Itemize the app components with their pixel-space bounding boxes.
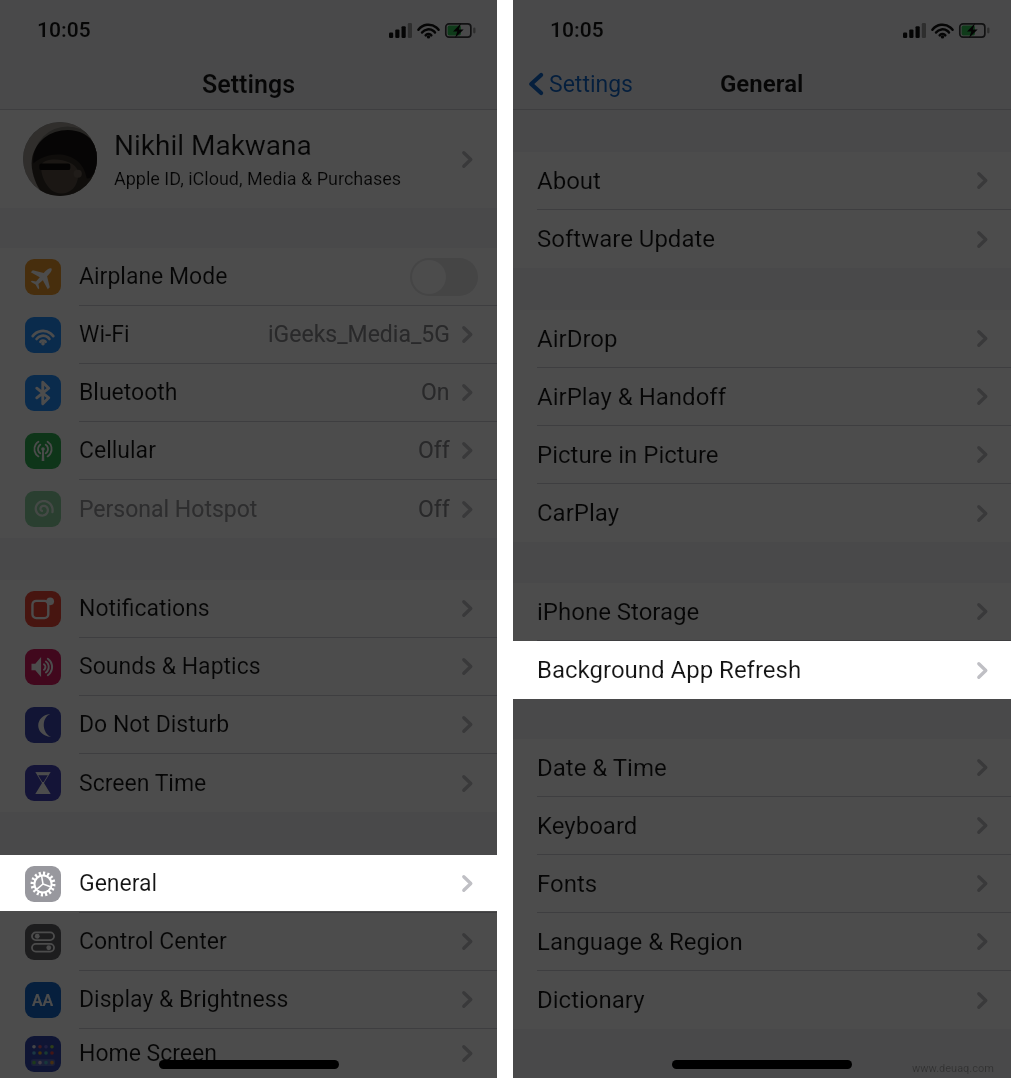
staticText: Dictionary xyxy=(537,986,645,1014)
button[interactable]: Wi-Fi xyxy=(0,306,497,363)
staticText: Personal Hotspot xyxy=(79,496,258,523)
staticText: General xyxy=(720,70,804,98)
staticText: General xyxy=(79,870,158,897)
button[interactable]: About xyxy=(513,152,1011,209)
staticText: Settings xyxy=(549,71,633,98)
button[interactable]: CarPlay xyxy=(513,484,1011,542)
staticText: Keyboard xyxy=(537,812,638,840)
staticText: Background App Refresh xyxy=(537,656,802,684)
staticText: Do Not Disturb xyxy=(79,711,230,738)
button[interactable]: Fonts xyxy=(513,855,1011,912)
staticText: Off xyxy=(418,496,450,523)
staticText: Language & Region xyxy=(537,928,743,956)
staticText: Control Center xyxy=(79,928,227,955)
button[interactable]: Control Center xyxy=(0,913,497,970)
staticText: iGeeks_Media_5G xyxy=(268,321,450,348)
staticText: Software Update xyxy=(537,225,716,253)
button[interactable]: Bluetooth xyxy=(0,364,497,421)
staticText: Screen Time xyxy=(79,770,207,797)
button[interactable]: Back to Settings xyxy=(528,69,633,99)
staticText: Wi-Fi xyxy=(79,321,130,348)
button[interactable]: Airplane Mode toggle xyxy=(410,258,478,296)
staticText: 10:05 xyxy=(550,18,604,43)
staticText: Picture in Picture xyxy=(537,441,719,469)
staticText: 10:05 xyxy=(37,18,91,43)
button[interactable]: Screen Time xyxy=(0,754,497,812)
button[interactable]: Dictionary xyxy=(513,971,1011,1029)
staticText: AirPlay & Handoff xyxy=(537,383,727,411)
button[interactable]: Do Not Disturb xyxy=(0,696,497,753)
button[interactable]: Sounds & Haptics xyxy=(0,638,497,695)
staticText: CarPlay xyxy=(537,499,620,527)
button[interactable]: AirPlay & Handoff xyxy=(513,368,1011,425)
staticText: Sounds & Haptics xyxy=(79,653,261,680)
staticText: Apple ID, iCloud, Media & Purchases xyxy=(114,168,402,189)
button[interactable]: Airplane Mode xyxy=(0,248,497,305)
button[interactable]: General xyxy=(0,855,497,912)
staticText: AA xyxy=(32,991,54,1010)
staticText: Off xyxy=(418,437,450,464)
staticText: On xyxy=(421,379,450,406)
staticText: About xyxy=(537,167,601,195)
staticText: Display & Brightness xyxy=(79,986,289,1013)
staticText: Cellular xyxy=(79,437,156,464)
button[interactable]: AA xyxy=(0,971,497,1028)
button[interactable]: Cellular xyxy=(0,422,497,479)
staticText: Fonts xyxy=(537,870,598,898)
staticText: Home Screen xyxy=(79,1040,217,1067)
button[interactable]: Background App Refresh xyxy=(513,641,1011,699)
button[interactable]: Home Screen xyxy=(0,1029,497,1078)
staticText: Notifications xyxy=(79,595,210,622)
button[interactable]: Software Update xyxy=(513,210,1011,268)
button[interactable]: Date & Time xyxy=(513,739,1011,796)
button[interactable]: iPhone Storage xyxy=(513,583,1011,640)
button[interactable]: Notifications xyxy=(0,580,497,637)
button[interactable]: Nikhil Makwana xyxy=(0,110,497,208)
button[interactable]: Picture in Picture xyxy=(513,426,1011,483)
button[interactable]: AirDrop xyxy=(513,310,1011,367)
staticText: iPhone Storage xyxy=(537,598,700,626)
staticText: Settings xyxy=(202,70,296,99)
staticText: www.deuaq.com xyxy=(912,1062,994,1075)
button[interactable]: Language & Region xyxy=(513,913,1011,970)
staticText: Date & Time xyxy=(537,754,667,782)
staticText: Airplane Mode xyxy=(79,263,228,290)
button[interactable]: Personal Hotspot xyxy=(0,480,497,538)
staticText: Bluetooth xyxy=(79,379,178,406)
staticText: Nikhil Makwana xyxy=(114,129,312,162)
button[interactable]: Keyboard xyxy=(513,797,1011,854)
staticText: AirDrop xyxy=(537,325,618,353)
